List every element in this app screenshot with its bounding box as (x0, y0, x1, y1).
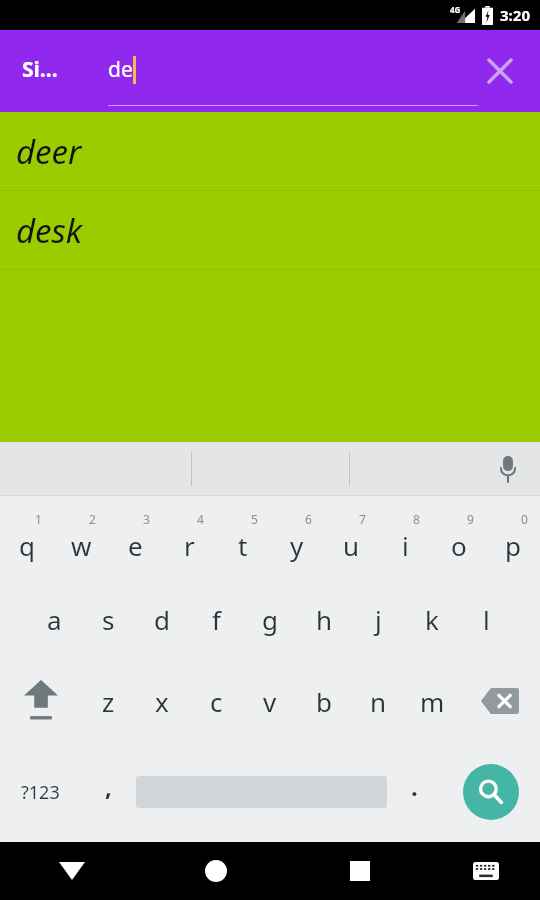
staticText: 0 (521, 511, 528, 527)
button[interactable]: v (243, 660, 297, 742)
staticText: r (184, 528, 195, 563)
staticText: 7 (359, 511, 366, 527)
button[interactable]: Shift (0, 660, 81, 742)
staticText: c (210, 684, 223, 719)
button[interactable]: Hide keyboard (0, 842, 144, 900)
staticText: 2 (89, 511, 96, 527)
button[interactable]: b (297, 660, 351, 742)
button[interactable]: 4 (162, 496, 216, 578)
staticText: 1 (35, 511, 42, 527)
staticText: a (47, 602, 62, 637)
staticText: de (108, 55, 133, 84)
button[interactable]: 7 (324, 496, 378, 578)
button[interactable]: . (387, 742, 442, 842)
staticText: h (316, 602, 333, 637)
button[interactable]: Home (144, 842, 288, 900)
staticText: m (420, 684, 445, 719)
staticText: Si... (22, 55, 58, 84)
staticText: 4 (197, 511, 204, 527)
button[interactable]: c (189, 660, 243, 742)
button[interactable]: 8 (378, 496, 432, 578)
staticText: p (505, 528, 521, 563)
button[interactable]: s (81, 578, 135, 660)
button[interactable]: Backspace (459, 660, 540, 742)
button[interactable]: , (81, 742, 136, 842)
button[interactable]: deer (0, 112, 540, 190)
button[interactable]: 6 (270, 496, 324, 578)
button[interactable]: l (459, 578, 513, 660)
staticText: 4G (450, 4, 461, 15)
staticText: 5 (251, 511, 258, 527)
staticText: t (238, 528, 248, 563)
button[interactable]: Clear search (478, 49, 522, 93)
button[interactable]: x (135, 660, 189, 742)
staticText: f (212, 602, 221, 637)
button[interactable]: k (405, 578, 459, 660)
button[interactable]: 1 (0, 496, 54, 578)
staticText: u (343, 528, 360, 563)
staticText: q (19, 528, 35, 563)
button[interactable]: 3 (108, 496, 162, 578)
button[interactable]: 0 (486, 496, 540, 578)
staticText: z (102, 684, 115, 719)
staticText: desk (16, 208, 83, 253)
staticText: k (425, 602, 439, 637)
button[interactable]: g (243, 578, 297, 660)
button[interactable]: a (27, 578, 81, 660)
button[interactable]: h (297, 578, 351, 660)
button[interactable]: f (189, 578, 243, 660)
staticText: . (411, 770, 418, 803)
staticText: d (154, 602, 170, 637)
button[interactable]: Switch keyboard (432, 842, 540, 900)
staticText: 3 (143, 511, 150, 527)
staticText: b (316, 684, 332, 719)
staticText: deer (16, 129, 82, 174)
staticText: 9 (467, 511, 474, 527)
staticText: o (451, 528, 467, 563)
staticText: e (128, 528, 143, 563)
button[interactable]: 9 (432, 496, 486, 578)
staticText: 6 (305, 511, 312, 527)
button[interactable]: m (405, 660, 459, 742)
staticText: i (402, 528, 409, 563)
staticText: ?123 (21, 780, 60, 805)
staticText: g (262, 602, 278, 637)
button[interactable]: Search (463, 764, 519, 820)
staticText: j (375, 602, 382, 637)
button[interactable]: n (351, 660, 405, 742)
staticText: , (105, 770, 112, 803)
staticText: v (263, 684, 277, 719)
button[interactable]: 5 (216, 496, 270, 578)
button[interactable]: d (135, 578, 189, 660)
button[interactable]: desk (0, 191, 540, 269)
staticText: l (483, 602, 490, 637)
button[interactable]: 2 (54, 496, 108, 578)
staticText: 3:20 (500, 5, 530, 25)
button[interactable]: Voice input (486, 447, 530, 491)
button[interactable]: z (81, 660, 135, 742)
button[interactable]: Recent apps (288, 842, 432, 900)
staticText: y (290, 528, 304, 563)
staticText: s (102, 602, 115, 637)
staticText: x (155, 684, 169, 719)
staticText: n (370, 684, 387, 719)
staticText: w (71, 528, 92, 563)
button[interactable]: ?123 (0, 742, 81, 842)
button[interactable]: j (351, 578, 405, 660)
staticText: 8 (413, 511, 420, 527)
